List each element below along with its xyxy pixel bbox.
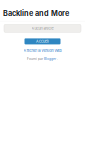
staticText: Afficher la version Web (23, 48, 61, 53)
staticText: Backline and More (3, 9, 69, 18)
staticText: Fourni par (27, 57, 43, 61)
staticText: Accueil (36, 39, 49, 44)
staticText: Aucun article (31, 26, 53, 31)
button[interactable]: Accueil (24, 38, 60, 44)
staticText: Blogger (44, 57, 56, 61)
button[interactable]: Afficher la version Web (23, 48, 61, 53)
staticText: . (57, 57, 58, 61)
button[interactable]: Blogger (44, 57, 56, 61)
